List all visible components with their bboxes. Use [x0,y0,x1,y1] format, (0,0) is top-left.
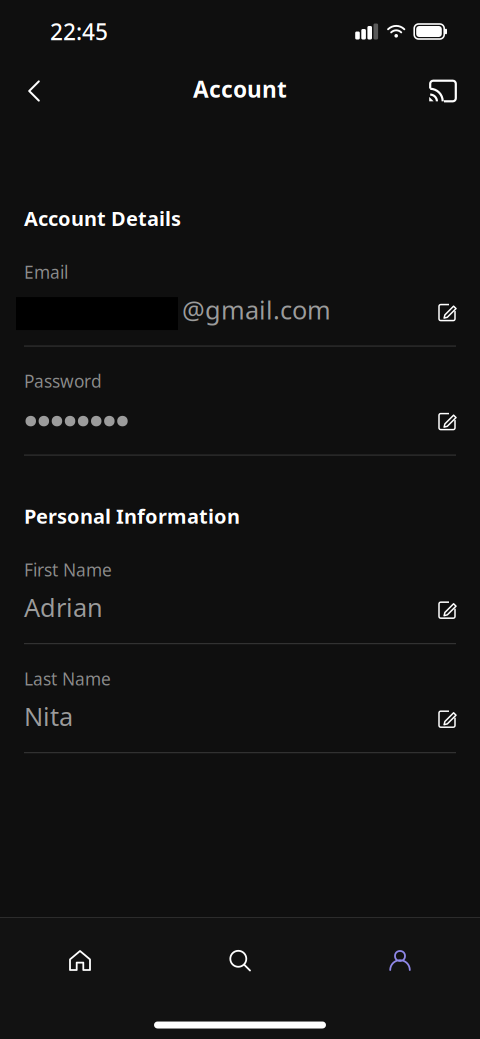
button[interactable]: Edit Password [425,398,469,440]
button[interactable]: Home [0,932,160,988]
staticText: Account Details [24,205,181,232]
staticText: Nita [24,699,73,733]
staticText: Account [193,74,287,104]
button[interactable]: Edit Last Name [425,695,469,737]
staticText: Last Name [24,667,111,690]
button[interactable]: Search [160,932,320,988]
staticText: 22:45 [50,16,108,46]
staticText: @gmail.com [182,293,331,326]
button[interactable]: Edit Email [425,289,469,331]
staticText: Adrian [24,590,103,624]
button[interactable]: Profile [320,932,480,988]
button[interactable]: Edit First Name [425,586,469,628]
staticText: First Name [24,558,112,581]
staticText: Personal Information [24,503,240,529]
staticText: Email [24,261,68,284]
button[interactable]: Back [12,69,56,113]
button[interactable]: Cast [421,69,465,113]
staticText: Password [24,370,102,393]
